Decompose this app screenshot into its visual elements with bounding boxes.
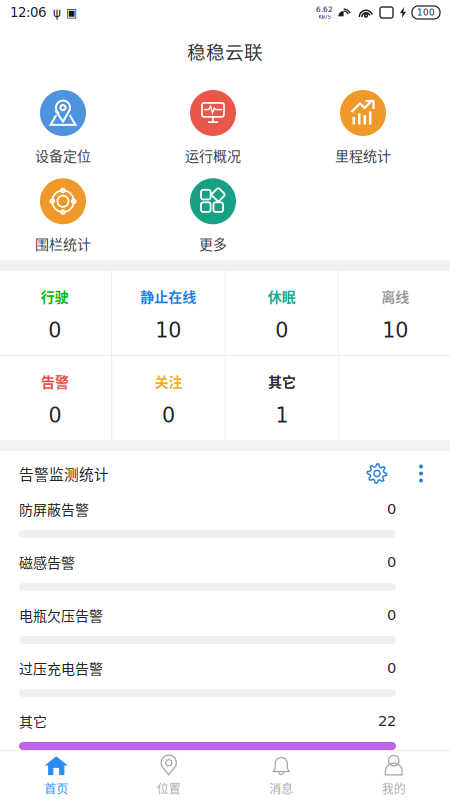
staticText: 行驶 — [41, 286, 69, 306]
staticText: 12:06 — [10, 5, 46, 20]
staticText: 其它 — [268, 371, 296, 391]
staticText: 位置 — [157, 779, 181, 797]
staticText: 0 — [387, 553, 396, 571]
staticText: 首页 — [44, 779, 68, 797]
button[interactable]: 里程统计 — [288, 90, 438, 165]
staticText: 离线 — [381, 286, 409, 306]
staticText: 里程统计 — [335, 145, 391, 165]
staticText: 0 — [387, 659, 396, 677]
staticText: 休眠 — [268, 286, 296, 306]
staticText: 过压充电告警 — [19, 658, 103, 678]
staticText: 1 — [275, 403, 288, 427]
staticText: 10 — [155, 318, 181, 342]
button[interactable]: 首页 — [0, 750, 112, 800]
button[interactable]: Settings — [359, 457, 395, 489]
staticText: 告警 — [41, 371, 69, 391]
staticText: 0 — [387, 606, 396, 624]
staticText: 围栏统计 — [35, 233, 91, 254]
button[interactable]: 消息 — [225, 750, 337, 800]
button[interactable]: 围栏统计 — [0, 178, 138, 254]
staticText: 0 — [48, 403, 61, 427]
staticText: 我的 — [382, 779, 406, 797]
staticText: 磁感告警 — [19, 552, 75, 572]
staticText: 更多 — [199, 233, 227, 254]
staticText: 消息 — [269, 779, 293, 797]
staticText: KB/S — [318, 14, 330, 20]
button[interactable]: 设备定位 — [0, 90, 138, 165]
staticText: 0 — [48, 318, 61, 342]
staticText: 运行概况 — [185, 145, 241, 165]
staticText: 100 — [417, 7, 435, 18]
button[interactable]: 我的 — [337, 750, 450, 800]
staticText: 防屏蔽告警 — [19, 499, 89, 519]
staticText: 0 — [162, 403, 175, 427]
button[interactable]: More options — [409, 457, 433, 489]
staticText: 10 — [382, 318, 408, 342]
staticText: 设备定位 — [35, 145, 91, 165]
staticText: 0 — [387, 500, 396, 518]
staticText: 其它 — [19, 711, 47, 731]
staticText: ▣ — [66, 5, 77, 19]
staticText: 6.62 — [316, 5, 333, 14]
staticText: 静止在线 — [140, 286, 196, 306]
staticText: 0 — [275, 318, 288, 342]
button[interactable]: 位置 — [112, 750, 225, 800]
staticText: 关注 — [154, 371, 182, 391]
staticText: 电瓶欠压告警 — [19, 605, 103, 625]
staticText: ψ — [53, 5, 61, 19]
button[interactable]: 更多 — [138, 178, 288, 254]
staticText: 22 — [378, 712, 396, 730]
button[interactable]: 运行概况 — [138, 90, 288, 165]
staticText: 稳稳云联 — [187, 37, 263, 64]
staticText: 告警监测统计 — [19, 463, 109, 484]
